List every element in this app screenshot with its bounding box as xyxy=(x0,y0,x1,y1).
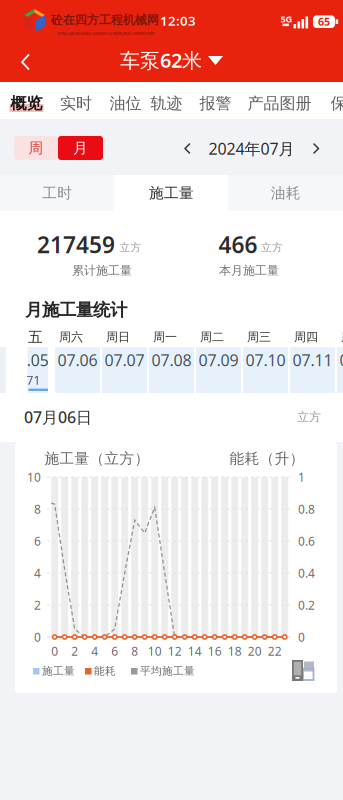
button[interactable]: 实时 xyxy=(60,94,92,113)
staticText: 车泵62米 xyxy=(120,47,202,73)
button[interactable]: 产品图册 xyxy=(248,94,312,113)
button[interactable]: 周 xyxy=(14,136,58,160)
staticText: 8 xyxy=(34,501,41,517)
button[interactable]: 轨迹 xyxy=(151,94,183,113)
button[interactable]: 报警 xyxy=(199,94,231,113)
button[interactable]: Back xyxy=(4,40,44,84)
staticText: 12:03 xyxy=(160,12,196,29)
staticText: 217459 xyxy=(37,229,115,259)
staticText: 07.10 xyxy=(245,349,285,371)
staticText: 2024年07月 xyxy=(208,138,294,159)
staticText: 0.6 xyxy=(298,533,315,549)
staticText: 0 xyxy=(34,629,41,645)
staticText: 20 xyxy=(248,643,262,659)
staticText: 71 xyxy=(26,372,40,388)
staticText: 5G xyxy=(280,13,292,25)
staticText: 2 xyxy=(34,597,41,613)
button[interactable]: 周四 xyxy=(290,331,335,392)
staticText: 工时 xyxy=(42,184,72,202)
staticText: 07月06日 xyxy=(24,406,92,428)
staticText: 07.09 xyxy=(198,349,238,371)
button[interactable]: 周日 xyxy=(102,331,147,392)
staticText: 保养 xyxy=(330,94,343,113)
staticText: 07.06 xyxy=(57,349,97,371)
staticText: 2 xyxy=(71,643,78,659)
staticText: 65 xyxy=(318,15,330,29)
staticText: 施工量（立方） xyxy=(44,449,149,467)
staticText: 07.05 xyxy=(9,349,49,371)
staticText: TONG ZAI SI FANG CONSTRUCTION MACHINERY … xyxy=(57,31,155,36)
staticText: 07.07 xyxy=(104,349,144,371)
staticText: 14 xyxy=(188,643,202,659)
staticText: 周四 xyxy=(294,330,318,344)
staticText: 8 xyxy=(131,643,138,659)
staticText: 10 xyxy=(27,469,41,485)
staticText: 6 xyxy=(34,533,41,549)
button[interactable]: 车泵62米 xyxy=(120,47,223,73)
staticText: 立方 xyxy=(119,241,141,254)
button[interactable]: 保养 xyxy=(330,94,343,113)
staticText: 油位 xyxy=(109,94,141,113)
staticText: 周 xyxy=(28,139,43,157)
staticText: 4 xyxy=(34,565,41,581)
staticText: 6 xyxy=(111,643,118,659)
staticText: 0.4 xyxy=(298,565,315,581)
staticText: 1 xyxy=(298,469,305,485)
staticText: 累计施工量 xyxy=(72,263,132,278)
staticText: 4 xyxy=(91,643,98,659)
staticText: 466 xyxy=(218,229,257,259)
staticText: 月施工量统计 xyxy=(25,299,127,321)
button[interactable]: Rotate chart xyxy=(291,659,315,682)
button[interactable]: Previous month xyxy=(177,138,197,158)
button[interactable]: 07.05 xyxy=(27,347,48,393)
staticText: 18 xyxy=(228,643,242,659)
staticText: 周三 xyxy=(247,330,271,344)
staticText: 0 xyxy=(51,643,58,659)
button[interactable]: 工时 xyxy=(0,175,114,211)
staticText: 轨迹 xyxy=(151,94,183,113)
button[interactable]: 油位 xyxy=(109,94,141,113)
staticText: 概览 xyxy=(10,94,42,113)
staticText: 周日 xyxy=(106,330,130,344)
staticText: 实时 xyxy=(60,94,92,113)
staticText: 产品图册 xyxy=(248,94,312,113)
staticText: 0 xyxy=(298,629,305,645)
staticText: 16 xyxy=(208,643,222,659)
staticText: 施工量 xyxy=(149,184,194,202)
staticText: 周五 xyxy=(341,330,343,344)
button[interactable]: 周一 xyxy=(149,331,194,392)
staticText: 10 xyxy=(148,643,162,659)
button[interactable]: 概览 xyxy=(10,94,42,113)
staticText: 07.11 xyxy=(292,349,332,371)
staticText: 砼在四方工程机械网 xyxy=(51,13,159,27)
staticText: 07.12 xyxy=(339,349,343,371)
staticText: 0.2 xyxy=(298,597,315,613)
staticText: 立方 xyxy=(297,410,321,424)
button[interactable]: 月 xyxy=(58,136,103,160)
staticText: 22 xyxy=(268,643,282,659)
staticText: 0.8 xyxy=(298,501,315,517)
button[interactable]: 周六 xyxy=(55,331,100,392)
staticText: 本月施工量 xyxy=(219,263,279,278)
button[interactable]: 施工量 xyxy=(114,175,229,211)
staticText: 立方 xyxy=(261,241,283,254)
staticText: 能耗（升） xyxy=(229,449,304,467)
staticText: 报警 xyxy=(199,94,231,113)
staticText: 施工量 xyxy=(42,664,75,677)
button[interactable]: 油耗 xyxy=(229,175,343,211)
staticText: 周六 xyxy=(59,330,83,344)
button[interactable]: 周二 xyxy=(196,331,241,392)
staticText: 月 xyxy=(73,139,88,157)
staticText: 五 xyxy=(28,328,43,346)
staticText: 周二 xyxy=(200,330,224,344)
staticText: 能耗 xyxy=(94,664,116,677)
staticText: 周一 xyxy=(153,330,177,344)
button[interactable]: 周三 xyxy=(243,331,288,392)
staticText: 平均施工量 xyxy=(140,664,195,677)
staticText: 油耗 xyxy=(271,184,301,202)
staticText: 12 xyxy=(168,643,182,659)
staticText: 07.08 xyxy=(151,349,191,371)
button[interactable]: Next month xyxy=(306,138,326,158)
button[interactable]: 周五 xyxy=(337,331,343,392)
